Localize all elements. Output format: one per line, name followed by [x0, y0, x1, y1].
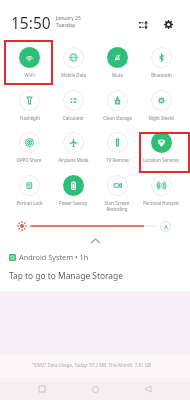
button[interactable]: Auto brightness [160, 221, 171, 232]
button[interactable]: Portrait Lock [7, 175, 51, 215]
button[interactable]: Bluetooth [139, 47, 183, 87]
button[interactable]: TV Remote [95, 132, 139, 172]
staticText: Portrait Lock [16, 200, 43, 206]
button[interactable]: Android System • 1h [0, 248, 190, 292]
staticText: Tuesday [56, 22, 76, 29]
button[interactable]: Edit tiles order [135, 16, 152, 33]
button[interactable]: Clean Storage [95, 90, 139, 130]
button[interactable]: Power Saving [51, 175, 95, 215]
staticText: 15:50 [11, 12, 51, 33]
button[interactable]: Start Screen Recording [95, 175, 139, 215]
button[interactable]: Mute [95, 47, 139, 87]
staticText: Tap to go to Manage Storage [9, 270, 123, 281]
button[interactable]: Location Services [139, 132, 183, 172]
staticText: Wi-Fi [24, 72, 35, 78]
button[interactable]: Mobile Data [51, 47, 95, 87]
staticText: Start Screen Recording [95, 200, 139, 212]
staticText: Clean Storage [103, 115, 132, 121]
button[interactable]: Personal Hotspot [139, 175, 183, 215]
button[interactable]: Expand quick settings [85, 236, 105, 246]
staticText: Calculator [63, 115, 84, 121]
staticText: Airplane Mode [58, 157, 89, 163]
button[interactable]: Wi-Fi [7, 47, 51, 87]
staticText: January 25 [56, 15, 81, 22]
staticText: Mute [112, 72, 123, 78]
staticText: Mobile Data [61, 72, 86, 78]
button[interactable]: Night Shield [139, 90, 183, 130]
button[interactable]: Airplane Mode [51, 132, 95, 172]
staticText: Flashlight [20, 115, 40, 121]
staticText: Power Saving [59, 200, 87, 206]
button[interactable]: Calculator [51, 90, 95, 130]
staticText: Personal Hotspot [143, 200, 179, 206]
staticText: Location Services [143, 157, 179, 163]
button[interactable]: Home [84, 378, 106, 400]
staticText: A [164, 223, 168, 231]
button[interactable]: Brightness [16, 220, 28, 232]
button[interactable]: OPPO Share [7, 132, 51, 172]
button[interactable]: Settings [160, 16, 176, 32]
staticText: OPPO Share [16, 157, 42, 163]
button[interactable]: Back [137, 378, 159, 400]
staticText: Bluetooth [151, 72, 172, 78]
button[interactable]: Brightness slider [31, 221, 156, 231]
staticText: Night Shield [148, 115, 174, 121]
staticText: "SIM2" Data Usage, Today: 57.2 MB, This … [32, 362, 152, 368]
staticText: TV Remote [106, 157, 129, 163]
staticText: Android System • 1h [19, 252, 89, 262]
button[interactable]: Recent apps [31, 378, 53, 400]
button[interactable]: Flashlight [7, 90, 51, 130]
